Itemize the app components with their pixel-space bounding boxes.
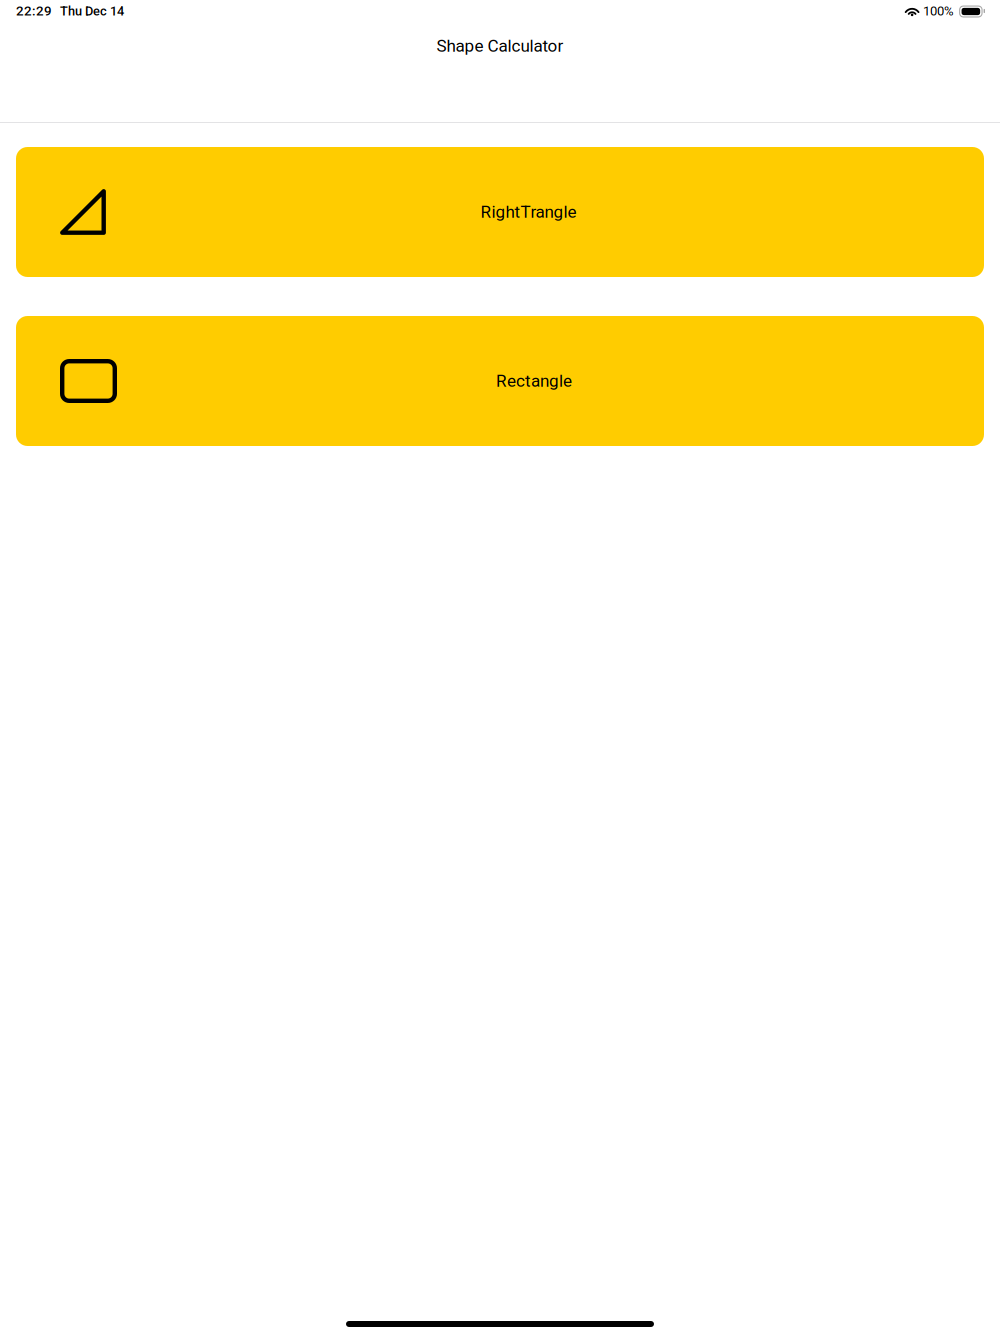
staticText: 22:29 xyxy=(16,3,52,19)
staticText: RightTrangle xyxy=(480,202,576,222)
staticText: Shape Calculator xyxy=(436,36,563,56)
button[interactable]: Rectangle xyxy=(16,316,984,446)
staticText: Rectangle xyxy=(496,371,572,391)
staticText: 100% xyxy=(923,3,954,19)
button[interactable]: RightTrangle xyxy=(16,147,984,277)
staticText: Thu Dec 14 xyxy=(60,3,124,18)
